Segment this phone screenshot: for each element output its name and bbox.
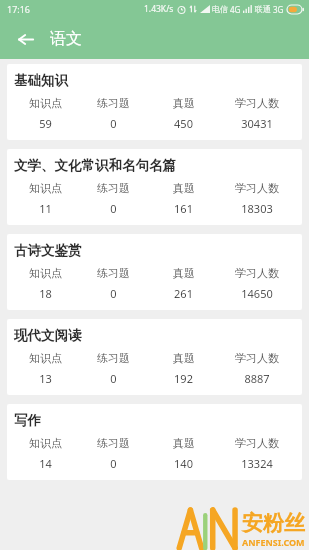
staticText: 现代文阅读 <box>14 327 82 344</box>
staticText: 192 <box>174 371 193 386</box>
staticText: 18 <box>39 286 52 301</box>
staticText: 练习题 <box>97 181 130 195</box>
staticText: 261 <box>174 286 193 301</box>
staticText: 练习题 <box>97 436 130 450</box>
staticText: 1.43K/s <box>144 3 174 15</box>
staticText: 161 <box>174 201 193 216</box>
button[interactable]: 基础知识 <box>7 64 302 140</box>
staticText: 14650 <box>241 286 273 301</box>
staticText: 450 <box>174 116 193 131</box>
staticText: 11 <box>39 201 52 216</box>
staticText: 学习人数 <box>235 266 279 280</box>
staticText: 学习人数 <box>235 96 279 110</box>
staticText: 17:16 <box>7 3 31 15</box>
staticText: 18303 <box>241 201 273 216</box>
button[interactable]: 现代文阅读 <box>7 319 302 395</box>
staticText: 30431 <box>241 116 273 131</box>
button[interactable]: Back <box>8 22 42 56</box>
staticText: 知识点 <box>29 351 62 365</box>
staticText: 59 <box>39 116 52 131</box>
staticText: 练习题 <box>97 351 130 365</box>
staticText: 真题 <box>173 436 195 450</box>
staticText: 真题 <box>173 96 195 110</box>
staticText: 联通 <box>255 4 271 14</box>
staticText: 练习题 <box>97 266 130 280</box>
staticText: 文学、文化常识和名句名篇 <box>14 157 176 174</box>
staticText: 3G <box>273 4 284 15</box>
staticText: 0 <box>110 456 117 471</box>
staticText: 学习人数 <box>235 181 279 195</box>
button[interactable]: 写作 <box>7 404 302 480</box>
staticText: 练习题 <box>97 96 130 110</box>
staticText: 写作 <box>14 412 41 429</box>
staticText: 语文 <box>50 29 82 49</box>
staticText: 13 <box>39 371 52 386</box>
staticText: 知识点 <box>29 436 62 450</box>
staticText: 电信 <box>212 4 228 14</box>
staticText: 知识点 <box>29 266 62 280</box>
staticText: 140 <box>174 456 193 471</box>
staticText: 古诗文鉴赏 <box>14 242 82 259</box>
staticText: 14 <box>39 456 52 471</box>
staticText: 知识点 <box>29 181 62 195</box>
staticText: 0 <box>110 201 117 216</box>
staticText: 知识点 <box>29 96 62 110</box>
staticText: 基础知识 <box>14 72 68 89</box>
staticText: 真题 <box>173 266 195 280</box>
staticText: 0 <box>110 286 117 301</box>
button[interactable]: 文学、文化常识和名句名篇 <box>7 149 302 225</box>
staticText: 学习人数 <box>235 436 279 450</box>
staticText: ANFENSI.COM <box>242 536 305 548</box>
staticText: 8887 <box>244 371 270 386</box>
staticText: 13324 <box>241 456 273 471</box>
staticText: 学习人数 <box>235 351 279 365</box>
staticText: 安粉丝 <box>242 510 305 536</box>
button[interactable]: 古诗文鉴赏 <box>7 234 302 310</box>
staticText: 0 <box>110 116 117 131</box>
staticText: 4G <box>230 4 241 15</box>
staticText: 真题 <box>173 181 195 195</box>
staticText: 0 <box>110 371 117 386</box>
staticText: 真题 <box>173 351 195 365</box>
